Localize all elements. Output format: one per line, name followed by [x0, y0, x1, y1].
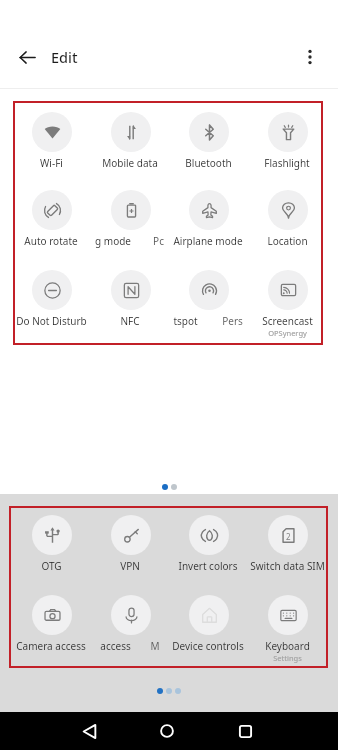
staticText: OPSynergy: [268, 328, 307, 338]
button[interactable]: [169, 112, 248, 176]
button[interactable]: Back: [69, 712, 109, 750]
staticText: NFC: [120, 314, 140, 328]
button[interactable]: [12, 270, 91, 334]
staticText: OTG: [41, 559, 62, 573]
staticText: Flashlight: [264, 156, 310, 170]
staticText: Screencast: [262, 314, 313, 328]
button[interactable]: [12, 595, 91, 659]
button[interactable]: [91, 270, 170, 334]
staticText: Bluetooth: [185, 156, 232, 170]
staticText: M: [150, 639, 160, 653]
staticText: Switch data SIM: [250, 559, 325, 573]
button[interactable]: More options: [290, 37, 330, 77]
staticText: Device controls: [172, 639, 244, 653]
button[interactable]: [169, 190, 248, 254]
button[interactable]: [12, 112, 91, 176]
button[interactable]: [169, 515, 248, 579]
staticText: Keyboard: [265, 639, 310, 653]
button[interactable]: [248, 595, 327, 659]
button[interactable]: [248, 190, 327, 254]
button[interactable]: [91, 190, 170, 254]
staticText: Airplane mode: [173, 234, 243, 248]
staticText: Invert colors: [178, 559, 238, 573]
staticText: g mode: [95, 234, 131, 248]
button[interactable]: [248, 270, 327, 334]
staticText: VPN: [120, 559, 140, 573]
button[interactable]: [91, 112, 170, 176]
staticText: Auto rotate: [24, 234, 78, 248]
button[interactable]: Home: [147, 712, 187, 750]
staticText: Pc: [153, 234, 164, 248]
button[interactable]: Edit: [51, 40, 78, 74]
button[interactable]: [169, 270, 248, 334]
button[interactable]: [169, 595, 248, 659]
staticText: 2: [286, 531, 291, 542]
staticText: Settings: [273, 653, 302, 663]
button[interactable]: [248, 112, 327, 176]
staticText: tspot: [173, 314, 198, 328]
button[interactable]: Recents: [225, 712, 265, 750]
staticText: Camera access: [16, 639, 86, 653]
staticText: access: [100, 639, 131, 653]
button[interactable]: 2: [248, 515, 327, 579]
button[interactable]: [12, 190, 91, 254]
button[interactable]: Back: [7, 37, 47, 77]
button[interactable]: [12, 515, 91, 579]
staticText: Location: [267, 234, 308, 248]
staticText: Mobile data: [102, 156, 158, 170]
staticText: Wi-Fi: [40, 156, 63, 170]
button[interactable]: [91, 515, 170, 579]
staticText: Edit: [51, 47, 78, 67]
staticText: Do Not Disturb: [16, 314, 87, 328]
button[interactable]: [91, 595, 170, 659]
staticText: Pers: [222, 314, 243, 328]
